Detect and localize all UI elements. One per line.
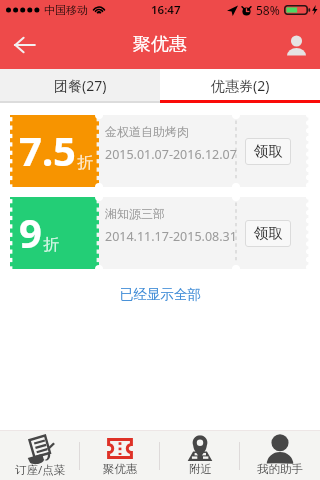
staticText: 金权道自助烤肉 (105, 124, 189, 139)
staticText: 已经显示全部 (120, 286, 201, 303)
staticText: 优惠券(2) (211, 76, 270, 95)
staticText: 16:47 (151, 2, 181, 18)
staticText: 中国移动 (44, 3, 88, 17)
button[interactable]: 我的助手 (240, 431, 320, 480)
staticText: 我的助手 (257, 462, 303, 476)
staticText: 9 (19, 205, 42, 259)
staticText: 7.5 (19, 123, 76, 177)
staticText: 折 (77, 153, 93, 173)
button[interactable]: Back (0, 21, 48, 69)
button[interactable]: 附近 (160, 431, 240, 480)
staticText: 领取 (254, 224, 283, 242)
staticText: 团餐(27) (54, 76, 107, 95)
staticText: 聚优惠 (133, 33, 187, 56)
button[interactable]: 领取 (245, 138, 291, 165)
staticText: 湘知源三部 (105, 206, 165, 221)
button[interactable]: 优惠券(2) (160, 69, 320, 103)
staticText: 2015.01.07-2016.12.07 (105, 146, 237, 163)
staticText: 折 (43, 235, 59, 255)
button[interactable]: 团餐(27) (0, 69, 160, 103)
button[interactable]: 订座/点菜 (0, 431, 80, 480)
button[interactable]: 领取 (245, 220, 291, 247)
staticText: 聚优惠 (103, 462, 138, 476)
button[interactable]: Profile (272, 21, 320, 69)
staticText: 附近 (189, 462, 212, 476)
button[interactable]: 聚优惠 (80, 431, 160, 480)
button[interactable]: 已经显示全部 (0, 286, 320, 303)
staticText: 领取 (254, 142, 283, 160)
staticText: 2014.11.17-2015.08.31 (105, 228, 237, 245)
staticText: 58% (256, 2, 280, 18)
staticText: 订座/点菜 (15, 462, 66, 478)
